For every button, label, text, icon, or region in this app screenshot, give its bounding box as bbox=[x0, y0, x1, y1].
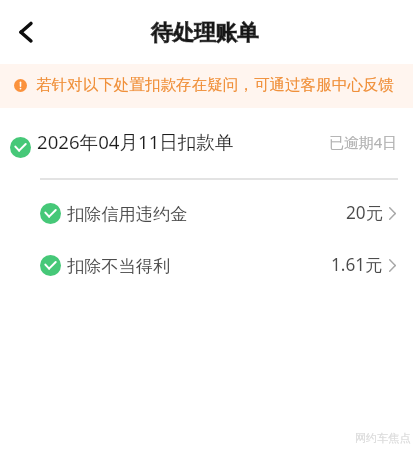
button[interactable]: 扣除信用违约金 bbox=[0, 193, 413, 234]
button[interactable]: 扣除不当得利 bbox=[0, 245, 413, 286]
staticText: 20元 bbox=[346, 201, 383, 224]
staticText: 已逾期4日 bbox=[329, 132, 398, 152]
staticText: 扣除信用违约金 bbox=[67, 203, 188, 225]
staticText: 待处理账单 bbox=[151, 19, 259, 46]
button[interactable]: 2026年04月11日扣款单 bbox=[0, 120, 413, 176]
staticText: 若针对以下处置扣款存在疑问，可通过客服中心反馈 bbox=[36, 75, 394, 95]
button[interactable]: Back bbox=[10, 12, 36, 54]
staticText: 待处理账单 bbox=[151, 19, 259, 46]
staticText: 网约车焦点 bbox=[355, 431, 411, 445]
staticText: 2026年04月11日扣款单 bbox=[37, 129, 234, 154]
staticText: 扣除不当得利 bbox=[67, 255, 171, 277]
staticText: 1.61元 bbox=[331, 253, 383, 276]
